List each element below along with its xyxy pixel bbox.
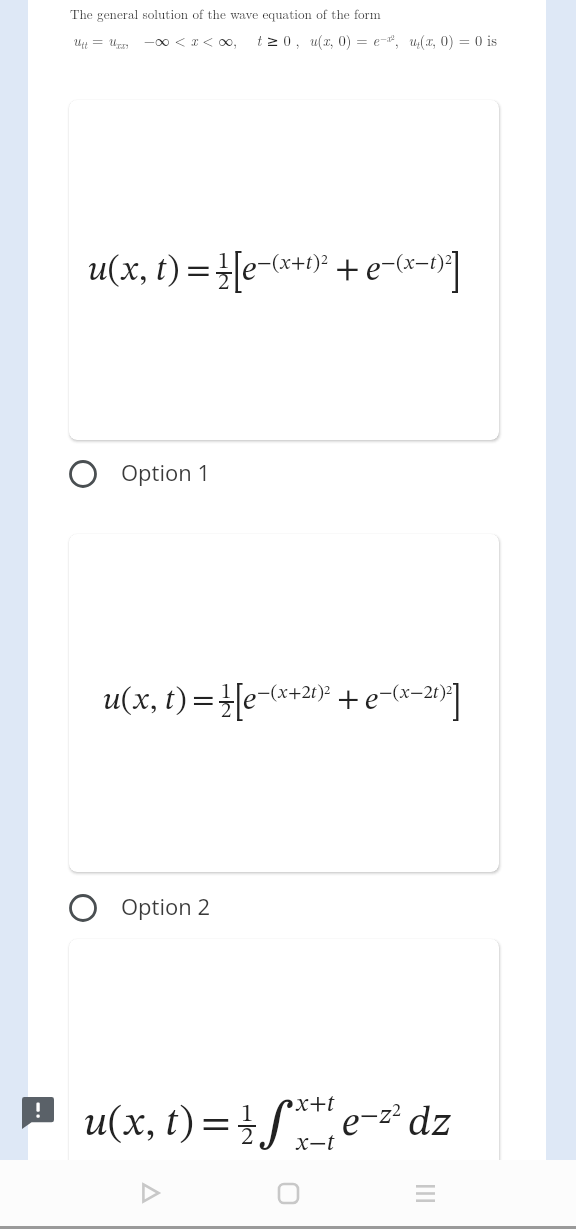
button[interactable]: 𝑢(𝑥, 𝑡) — [69, 939, 499, 1229]
staticText: 𝑒 — [243, 685, 257, 717]
staticText: = — [192, 685, 215, 717]
button[interactable]: Report a problem — [22, 1097, 54, 1129]
staticText: Option 2 — [121, 891, 210, 921]
staticText: −(𝑥+𝑡) — [257, 253, 321, 274]
staticText: + — [337, 684, 360, 716]
button[interactable]: 𝑢(𝑥, 𝑡) — [69, 534, 499, 872]
staticText: 2 — [241, 1125, 254, 1150]
staticText: Option 1 — [121, 457, 210, 487]
staticText: 𝑒 — [365, 685, 379, 717]
button[interactable]: Recent apps — [399, 1167, 451, 1219]
staticText: 2 — [446, 684, 453, 697]
staticText: utt = uxx, −∞ < x < ∞, t ≥ 0 , u(x, 0) =… — [73, 30, 497, 52]
staticText: 𝑢(𝑥, 𝑡) — [84, 1103, 194, 1144]
staticText: = — [201, 1103, 231, 1144]
staticText: 𝑢(𝑥, 𝑡) — [103, 685, 187, 717]
staticText: 2 — [221, 701, 232, 722]
button[interactable]: Option 1 — [28, 440, 546, 508]
staticText: 𝑑𝑧 — [408, 1103, 452, 1144]
staticText: ∫ — [258, 1098, 295, 1151]
staticText: 1 — [218, 251, 230, 274]
staticText: 𝑥+𝑡 — [295, 1092, 336, 1117]
button[interactable]: Option 2 — [28, 872, 546, 944]
staticText: −𝑧 — [360, 1103, 392, 1129]
staticText: 𝑒 — [242, 254, 257, 289]
staticText: −(𝑥+2𝑡) — [257, 684, 324, 703]
staticText: 1 — [221, 682, 232, 703]
staticText: + — [335, 253, 360, 288]
staticText: 2 — [445, 253, 452, 267]
staticText: 2 — [392, 1102, 401, 1120]
button[interactable]: Back — [125, 1167, 177, 1219]
staticText: −(𝑥−𝑡) — [381, 253, 445, 274]
staticText: The general solution of the wave equatio… — [70, 4, 381, 23]
staticText: −(𝑥−2𝑡) — [379, 684, 446, 703]
staticText: 1 — [241, 1102, 254, 1127]
button[interactable]: 𝑢(𝑥, 𝑡) — [69, 100, 499, 440]
staticText: 2 — [218, 272, 230, 295]
staticText: 𝑒 — [342, 1103, 360, 1144]
staticText: 𝑒 — [366, 254, 381, 289]
staticText: 𝑢(𝑥, 𝑡) — [88, 254, 180, 289]
staticText: 2 — [324, 684, 331, 697]
staticText: 𝑥−𝑡 — [295, 1131, 336, 1156]
staticText: = — [186, 254, 211, 289]
staticText: 2 — [321, 253, 328, 267]
button[interactable]: Home — [262, 1167, 314, 1219]
